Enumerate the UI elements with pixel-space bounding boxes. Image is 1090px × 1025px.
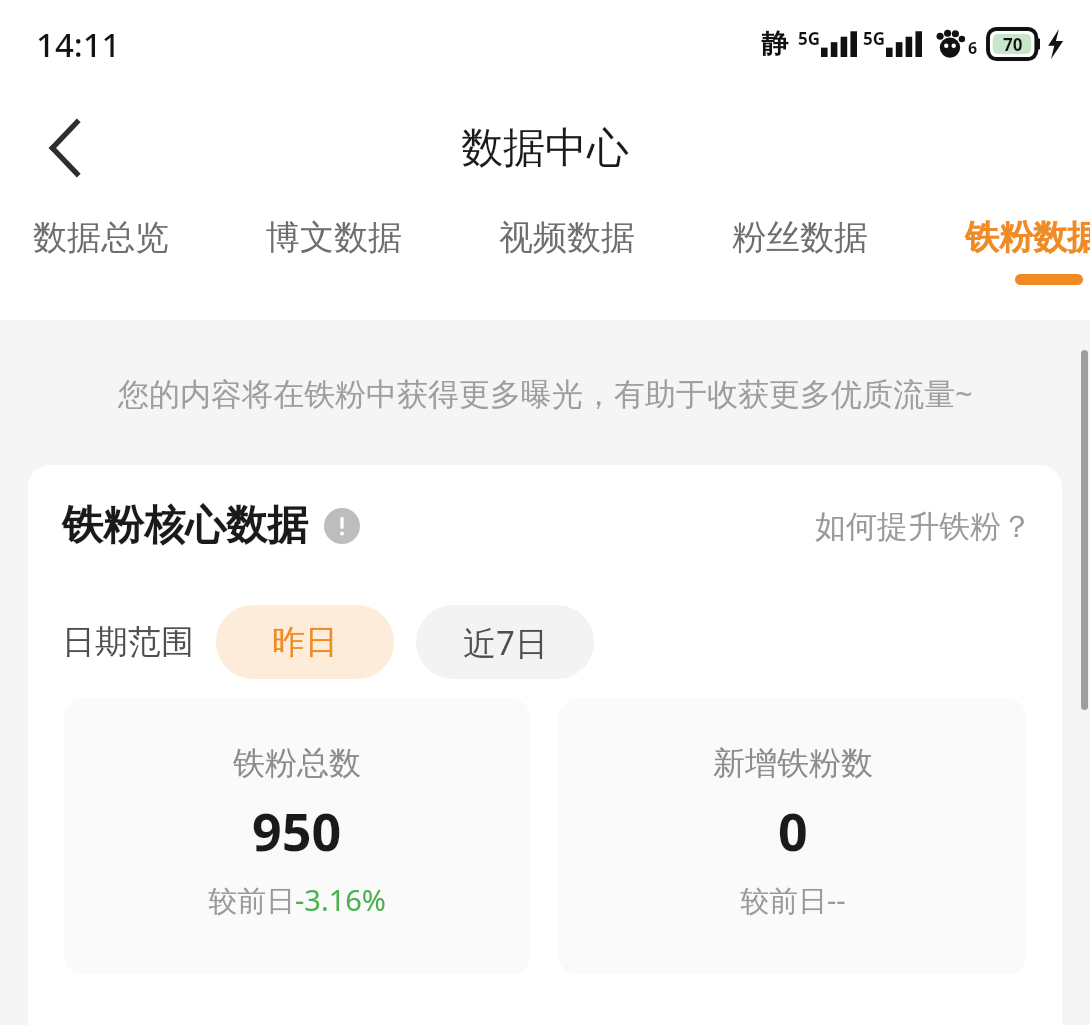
- staticText: 0: [778, 795, 808, 866]
- button[interactable]: Back: [26, 106, 102, 190]
- staticText: 静: [761, 27, 788, 61]
- button[interactable]: 粉丝数据: [732, 208, 965, 320]
- staticText: 6: [968, 37, 978, 59]
- staticText: 5G: [798, 27, 821, 50]
- staticText: 您的内容将在铁粉中获得更多曝光，有助于收获更多优质流量~: [118, 372, 973, 414]
- button[interactable]: 近7日: [416, 605, 594, 679]
- button[interactable]: 视频数据: [499, 208, 732, 320]
- staticText: 14:11: [36, 22, 121, 67]
- button[interactable]: 新增铁粉数: [559, 699, 1026, 974]
- button[interactable]: 铁粉核心数据: [62, 500, 360, 552]
- staticText: 新增铁粉数: [713, 743, 873, 783]
- button[interactable]: 博文数据: [266, 208, 499, 320]
- button[interactable]: 昨日: [216, 605, 394, 679]
- staticText: 视频数据: [499, 216, 635, 259]
- staticText: 70: [1003, 33, 1023, 56]
- staticText: 数据中心: [461, 122, 629, 175]
- staticText: 5G: [863, 27, 886, 50]
- staticText: 近7日: [463, 620, 548, 665]
- button[interactable]: 数据总览: [33, 208, 266, 320]
- staticText: 如何提升铁粉？: [815, 507, 1032, 546]
- staticText: 博文数据: [266, 216, 402, 259]
- staticText: 粉丝数据: [732, 216, 868, 259]
- button[interactable]: 铁粉总数: [64, 699, 530, 974]
- button[interactable]: 铁粉数据: [965, 208, 1090, 320]
- staticText: 数据总览: [33, 216, 169, 259]
- staticText: 950: [252, 795, 342, 866]
- button[interactable]: 如何提升铁粉？: [815, 507, 1032, 546]
- staticText: 日期范围: [62, 621, 194, 663]
- staticText: 昨日: [272, 621, 338, 663]
- staticText: 较前日--: [740, 880, 846, 920]
- staticText: 铁粉核心数据: [62, 500, 308, 552]
- staticText: 较前日-3.16%: [208, 880, 386, 920]
- staticText: 铁粉数据: [965, 216, 1090, 259]
- staticText: 铁粉总数: [233, 743, 361, 783]
